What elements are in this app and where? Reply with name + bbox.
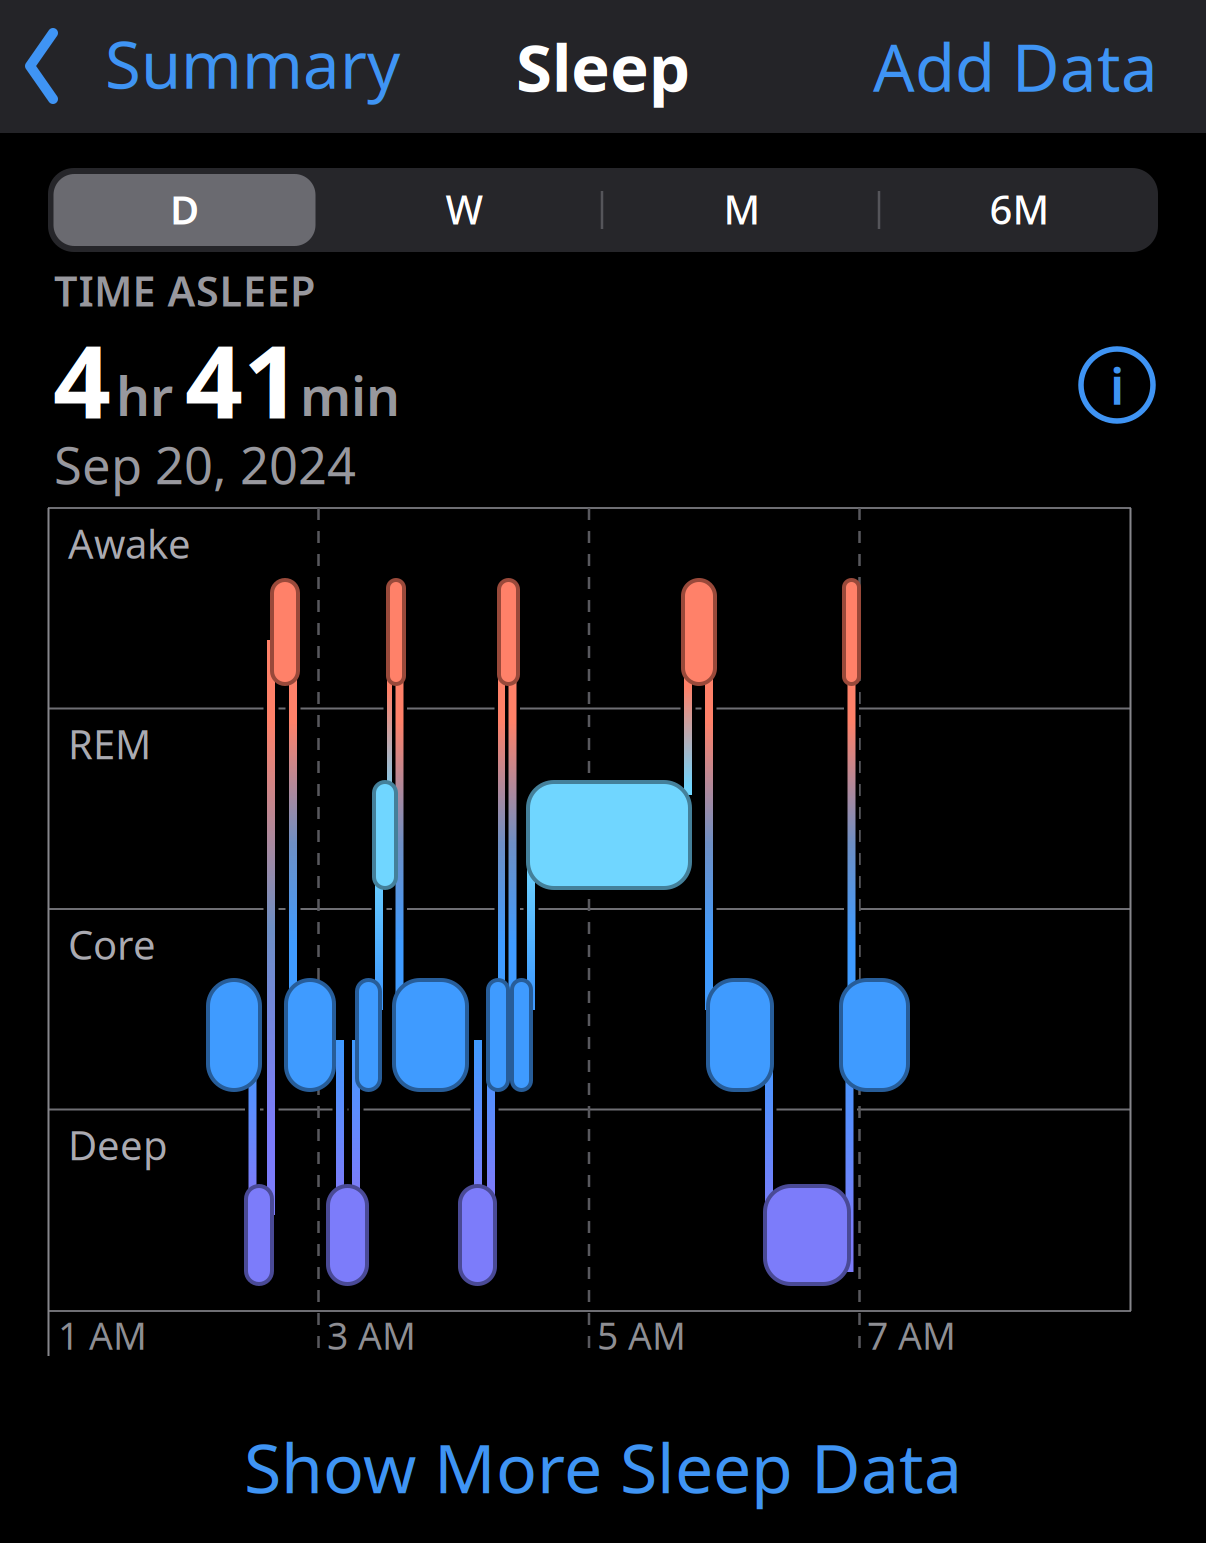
staticText: Sleep: [516, 23, 690, 110]
staticText: REM: [68, 717, 151, 770]
staticText: W: [445, 182, 483, 235]
staticText: 3 AM: [327, 1310, 416, 1360]
button[interactable]: 6M: [881, 167, 1158, 251]
staticText: 7 AM: [867, 1310, 956, 1360]
staticText: M: [723, 182, 760, 235]
staticText: 1 AM: [58, 1310, 147, 1360]
staticText: Add Data: [873, 23, 1158, 110]
staticText: 5 AM: [597, 1310, 686, 1360]
staticText: hr: [116, 360, 173, 431]
staticText: Core: [68, 918, 156, 971]
staticText: TIME ASLEEP: [54, 263, 315, 318]
staticText: i: [1110, 351, 1124, 419]
staticText: D: [170, 182, 199, 235]
button[interactable]: Add Data: [873, 23, 1158, 110]
staticText: 6M: [989, 182, 1049, 235]
staticText: 41: [185, 312, 301, 447]
staticText: Awake: [68, 517, 191, 570]
staticText: Show More Sleep Data: [244, 1422, 962, 1512]
staticText: min: [300, 360, 400, 431]
button[interactable]: Summary: [0, 0, 1206, 1543]
staticText: Summary: [105, 20, 400, 107]
button[interactable]: M: [603, 167, 880, 251]
button[interactable]: W: [326, 167, 603, 251]
button[interactable]: i: [1077, 345, 1157, 425]
staticText: Sep 20, 2024: [54, 431, 356, 498]
staticText: 4: [53, 312, 111, 447]
staticText: Deep: [68, 1118, 168, 1171]
button[interactable]: Show More Sleep Data: [0, 1422, 1206, 1512]
button[interactable]: D: [46, 167, 323, 251]
